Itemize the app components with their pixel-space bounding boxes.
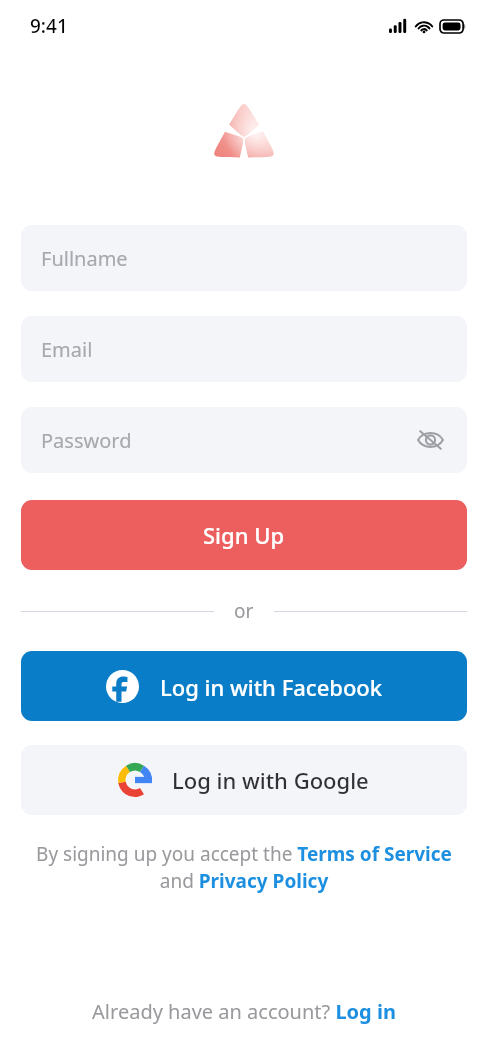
button[interactable]: Log in with Google: [21, 745, 467, 815]
button[interactable]: Already have an account? Log in: [0, 998, 488, 1025]
button[interactable]: Fullname: [21, 225, 467, 291]
staticText: 9:41: [30, 13, 68, 39]
staticText: By signing up you accept the Terms of Se…: [36, 841, 452, 894]
staticText: Log in with Google: [172, 765, 369, 795]
button[interactable]: By signing up you accept the Terms of Se…: [18, 841, 470, 894]
staticText: Email: [41, 336, 93, 363]
button[interactable]: Toggle password visibility: [411, 421, 449, 459]
staticText: Already have an account? Log in: [92, 998, 396, 1025]
button[interactable]: Sign Up: [21, 500, 467, 570]
button[interactable]: Log in with Facebook: [21, 651, 467, 721]
staticText: Log in with Facebook: [160, 672, 383, 702]
button[interactable]: Password: [21, 407, 467, 473]
staticText: or: [234, 598, 254, 624]
staticText: Sign Up: [203, 520, 285, 550]
staticText: Fullname: [41, 245, 128, 272]
staticText: Password: [41, 427, 132, 454]
button[interactable]: Email: [21, 316, 467, 382]
